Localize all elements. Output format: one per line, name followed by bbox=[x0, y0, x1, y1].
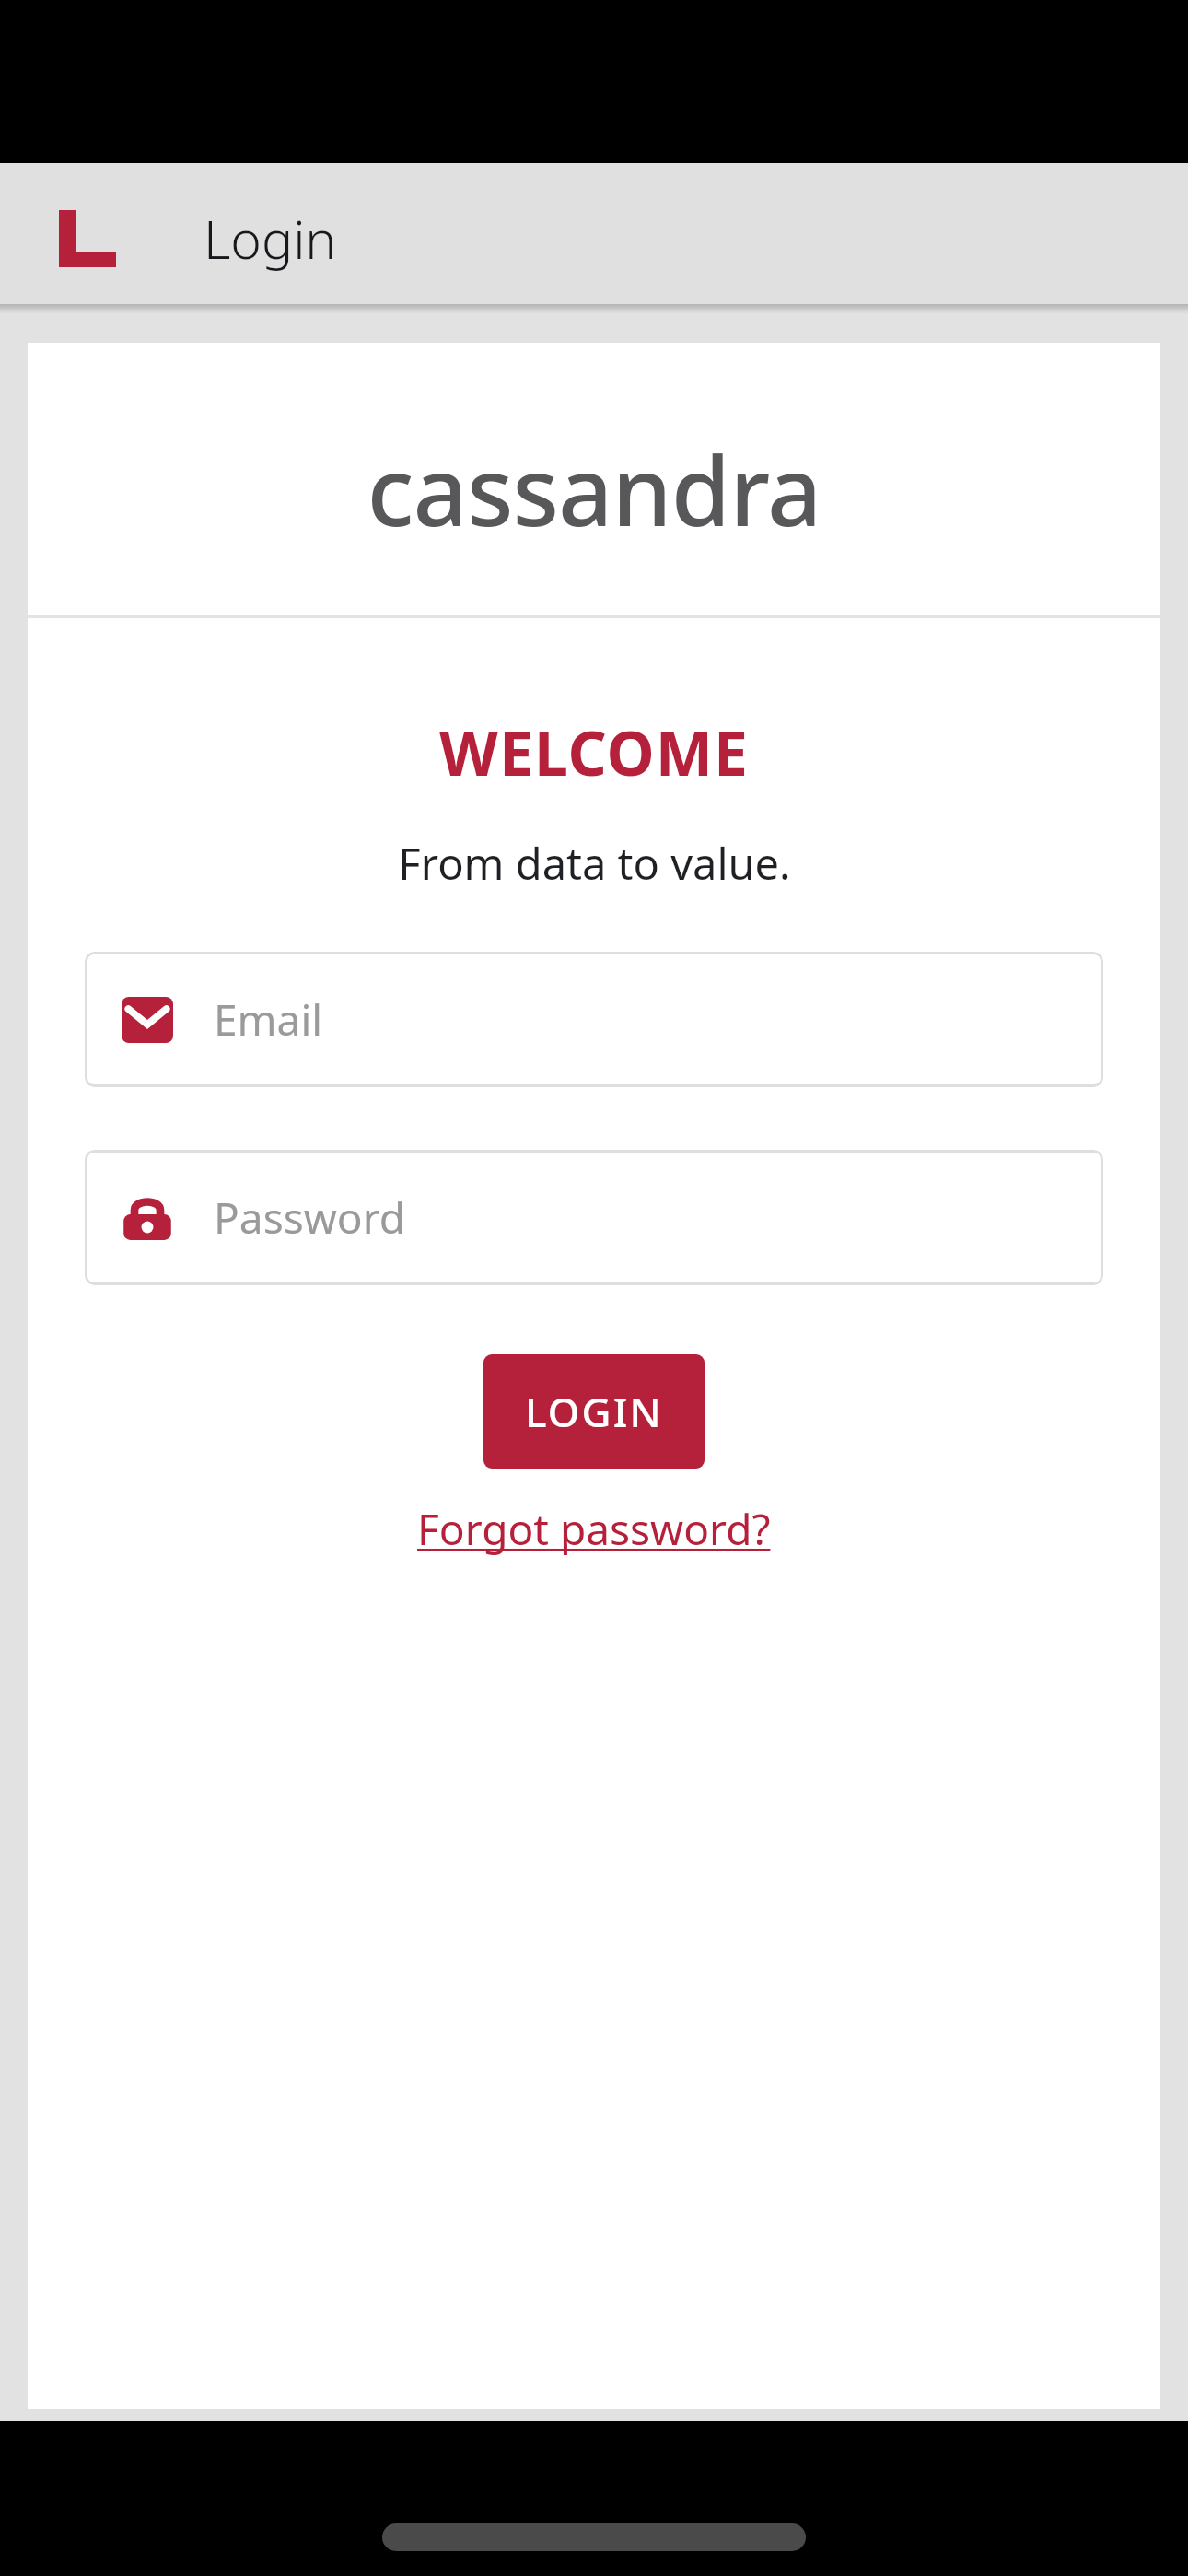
button[interactable]: Forgot password? bbox=[408, 1493, 780, 1565]
staticText: WELCOME bbox=[439, 710, 749, 793]
staticText: Forgot password? bbox=[417, 1500, 771, 1558]
button[interactable]: Email bbox=[85, 952, 1103, 1087]
staticText: cassandra bbox=[367, 424, 821, 534]
staticText: Login bbox=[204, 203, 337, 275]
staticText: Email bbox=[214, 990, 323, 1048]
button[interactable]: LOGIN bbox=[483, 1354, 705, 1469]
staticText: Password bbox=[214, 1188, 406, 1247]
staticText: From data to value. bbox=[398, 834, 791, 893]
other: App logo bbox=[59, 210, 116, 267]
button[interactable]: Password bbox=[85, 1150, 1103, 1285]
staticText: LOGIN bbox=[525, 1384, 663, 1439]
